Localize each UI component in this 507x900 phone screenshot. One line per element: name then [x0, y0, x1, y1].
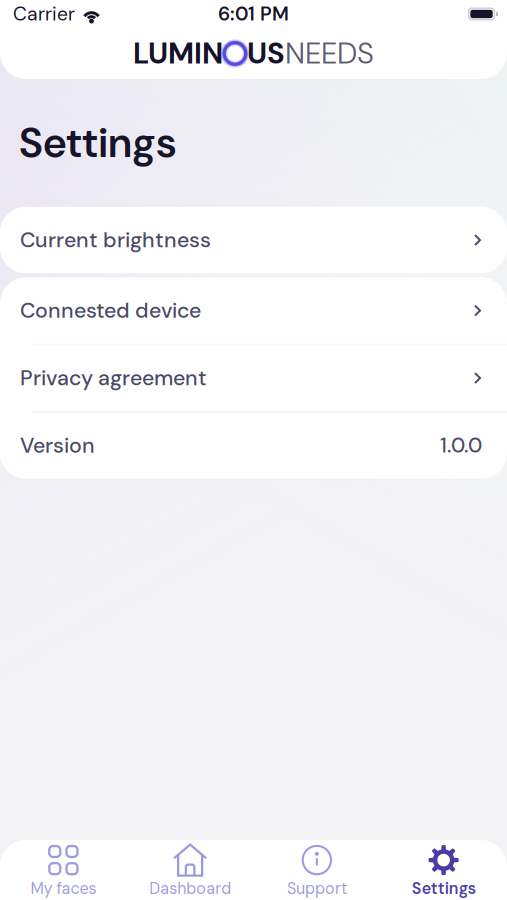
staticText: Current brightness [20, 226, 211, 254]
staticText: Support [287, 878, 347, 899]
button[interactable]: Connested device [0, 277, 507, 344]
button[interactable]: Settings [380, 843, 507, 899]
button[interactable]: Version [0, 412, 507, 479]
staticText: Settings [412, 878, 476, 899]
button[interactable]: My faces [0, 843, 127, 899]
button[interactable]: Current brightness [0, 207, 507, 273]
staticText: LUMIN [133, 34, 223, 73]
button[interactable]: Privacy agreement [0, 345, 507, 411]
staticText: Privacy agreement [20, 364, 207, 392]
staticText: My faces [30, 878, 96, 899]
button[interactable]: Support [253, 843, 380, 899]
staticText: Carrier [13, 1, 75, 27]
staticText: US [247, 34, 285, 73]
staticText: NEEDS [285, 34, 374, 73]
staticText: Settings [19, 116, 177, 170]
button[interactable]: Dashboard [127, 843, 254, 899]
staticText: Connested device [20, 297, 201, 324]
staticText: 1.0.0 [440, 432, 482, 459]
staticText: Version [20, 432, 95, 459]
staticText: Dashboard [149, 878, 231, 899]
staticText: 6:01 PM [218, 1, 289, 27]
